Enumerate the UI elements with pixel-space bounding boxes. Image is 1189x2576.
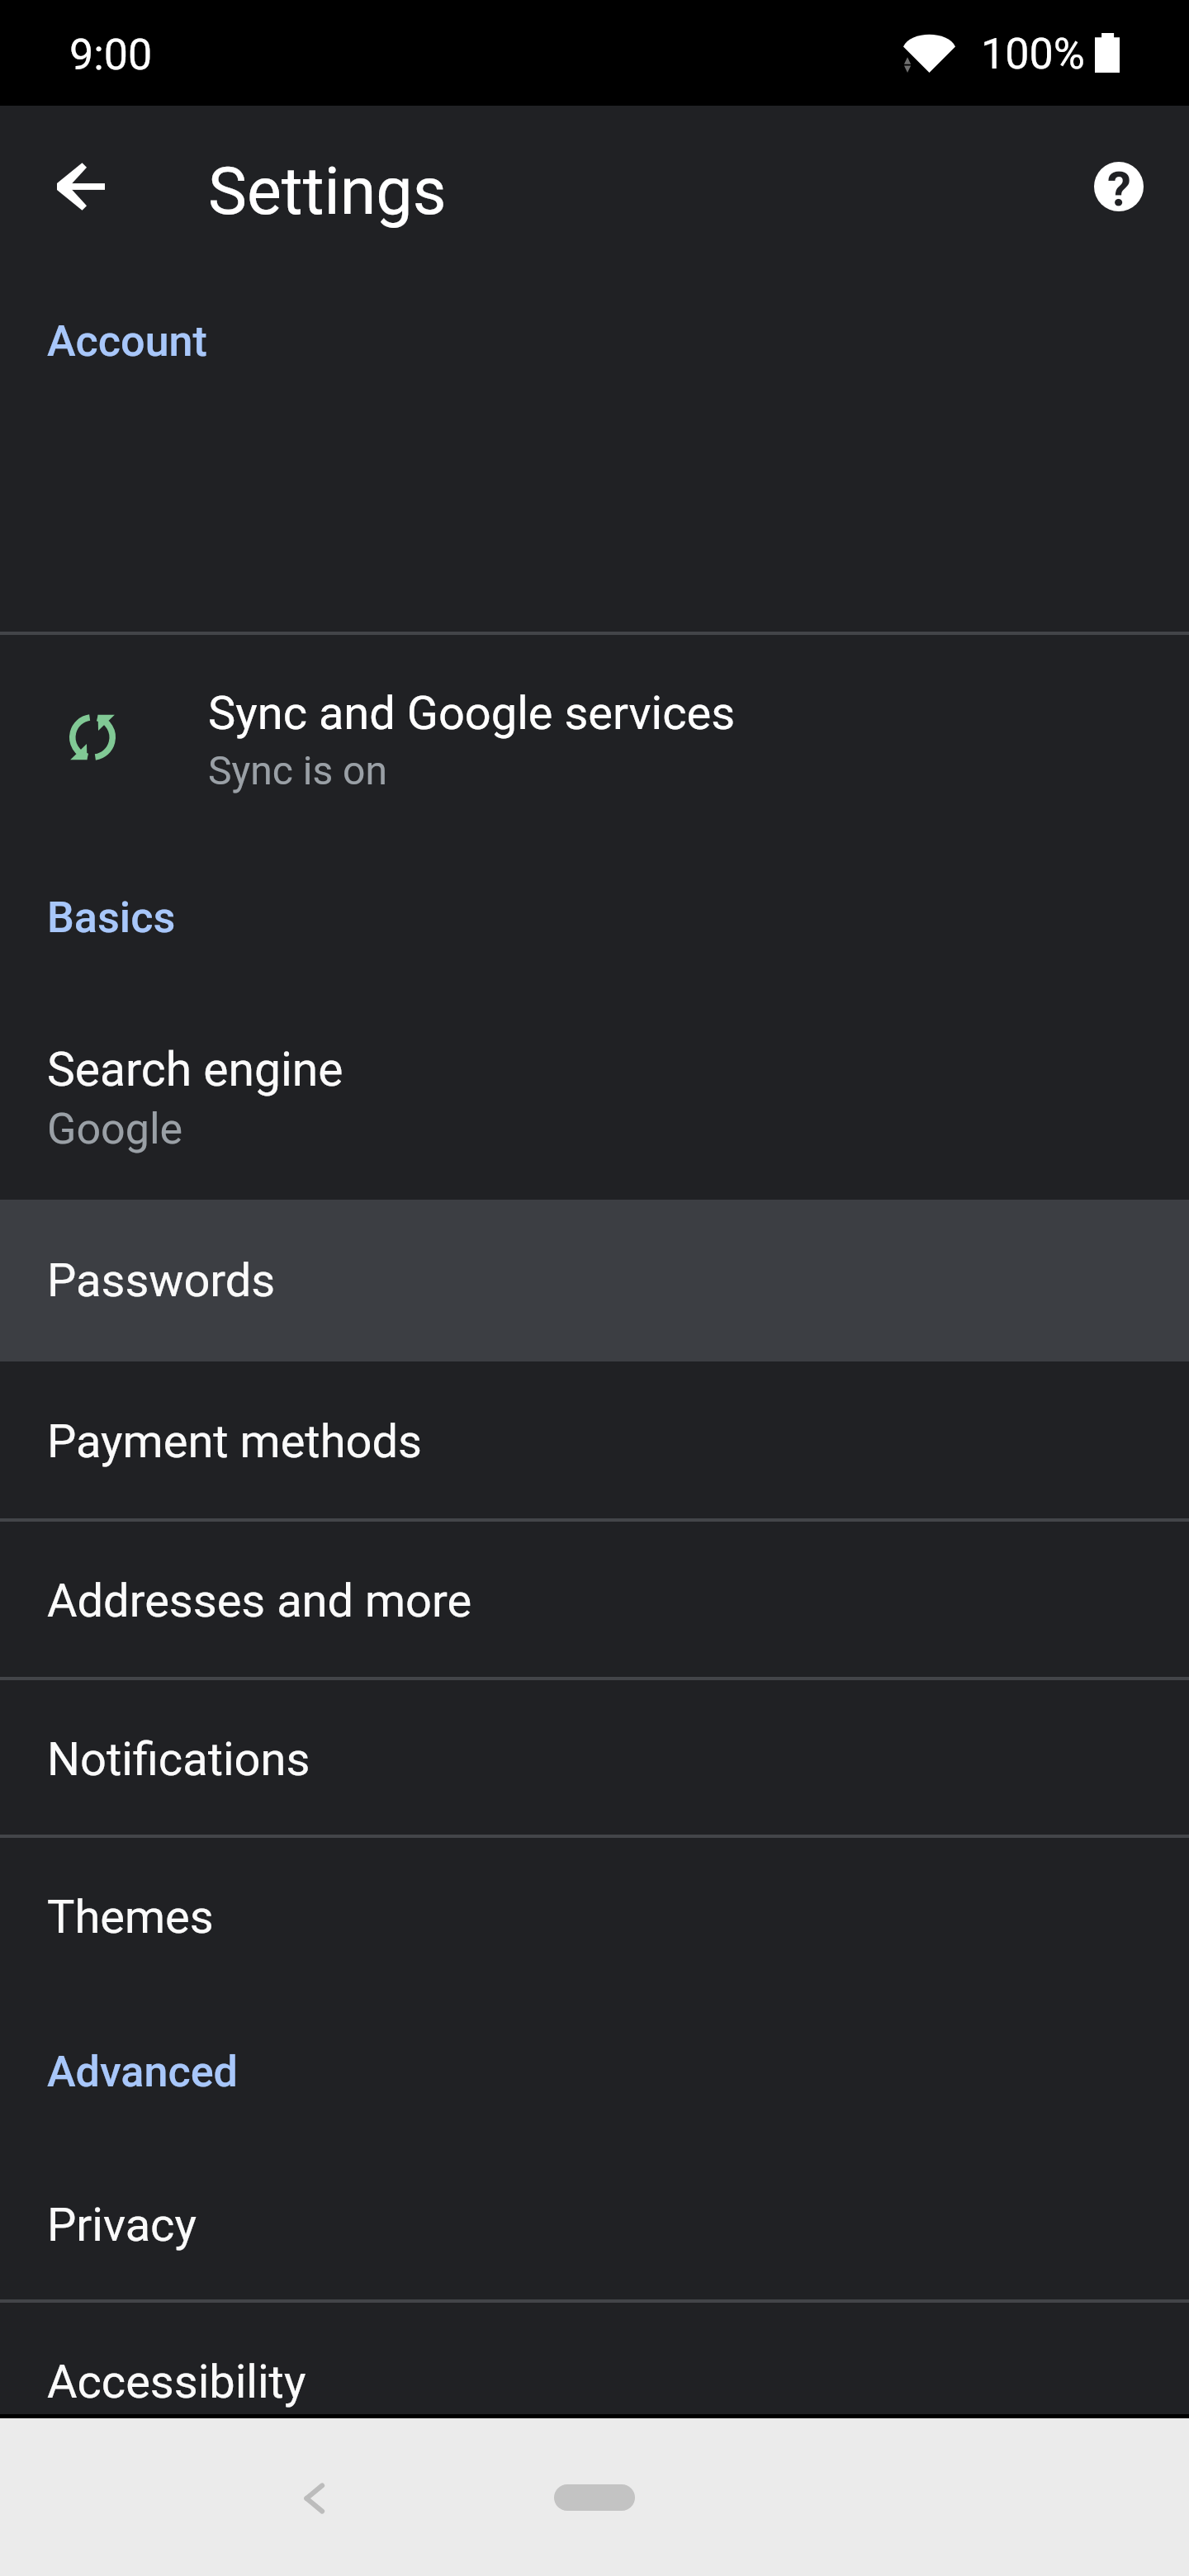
button[interactable]: Home	[504, 2456, 685, 2539]
staticText: Advanced	[47, 2047, 238, 2097]
button[interactable]: Addresses and more	[0, 1522, 1189, 1680]
button[interactable]: Help	[1069, 137, 1168, 236]
staticText: Privacy	[47, 2198, 197, 2252]
staticText: Sync and Google services	[208, 686, 736, 741]
button[interactable]: Themes	[0, 1838, 1189, 1996]
staticText: Passwords	[47, 1253, 276, 1308]
staticText: ?	[1107, 161, 1131, 211]
staticText: Search engine	[47, 1042, 343, 1097]
button[interactable]: Back	[31, 137, 130, 236]
staticText: Accessibility	[47, 2355, 306, 2409]
staticText: Sync is on	[208, 747, 387, 793]
staticText: Basics	[47, 893, 176, 943]
button[interactable]: Privacy	[0, 2147, 1189, 2303]
button[interactable]: Notifications	[0, 1680, 1189, 1838]
staticText: Account	[47, 316, 207, 367]
staticText: Payment methods	[47, 1414, 422, 1469]
staticText: Notifications	[47, 1732, 310, 1787]
staticText: 100%	[981, 29, 1085, 79]
staticText: Settings	[208, 154, 447, 230]
staticText: 9:00	[69, 30, 153, 80]
button[interactable]: Payment methods	[0, 1361, 1189, 1522]
button[interactable]: Accessibility	[0, 2303, 1189, 2461]
staticText: Themes	[47, 1890, 214, 1944]
staticText: Google	[47, 1104, 183, 1154]
button[interactable]: Back	[264, 2448, 363, 2547]
button[interactable]: Search engine	[0, 992, 1189, 1200]
staticText: Addresses and more	[47, 1574, 472, 1628]
button[interactable]: Passwords	[0, 1200, 1189, 1361]
button[interactable]: Sync and Google services	[0, 635, 1189, 844]
